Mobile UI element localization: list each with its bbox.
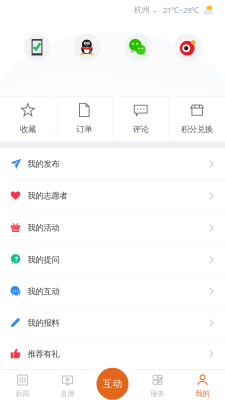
staticText: 互动 [102, 378, 122, 390]
button[interactable]: 手机号登录 [23, 34, 50, 61]
button[interactable]: 服务 [135, 370, 180, 400]
staticText: 订单 [76, 124, 92, 134]
button[interactable]: 我的 [180, 370, 225, 400]
staticText: 我的 [195, 389, 209, 398]
button[interactable]: QQ 登录 [74, 34, 101, 61]
button[interactable]: 互动 [96, 368, 128, 400]
staticText: ⌄ [152, 6, 158, 14]
staticText: 我的活动 [27, 222, 59, 233]
button[interactable]: 微信登录 [124, 34, 151, 61]
button[interactable]: 我的报料 [0, 307, 225, 338]
button[interactable]: 订单 [56, 96, 112, 141]
staticText: 直播 [60, 389, 74, 398]
staticText: 收藏 [20, 124, 36, 134]
staticText: 21℃~29℃ [163, 5, 199, 15]
button[interactable]: 收藏 [0, 96, 56, 141]
staticText: 我的志愿者 [27, 191, 67, 201]
button[interactable]: 直播 [45, 370, 90, 400]
staticText: 我的提问 [27, 254, 59, 265]
button[interactable]: 新闻 [0, 370, 45, 400]
staticText: 杭州 [134, 5, 150, 15]
staticText: 服务 [150, 389, 164, 398]
button[interactable]: 我的互动 [0, 276, 225, 307]
button[interactable]: ? [0, 244, 225, 276]
button[interactable]: 积分兑换 [169, 96, 225, 141]
staticText: ? [14, 254, 17, 264]
staticText: 积分兑换 [181, 124, 213, 134]
staticText: 推荐有礼 [27, 349, 59, 359]
button[interactable]: 评论 [113, 96, 169, 141]
button[interactable]: 微博登录 [174, 34, 201, 61]
button[interactable]: 杭州 [134, 5, 158, 15]
button[interactable]: 我的志愿者 [0, 180, 225, 212]
button[interactable]: 我的活动 [0, 212, 225, 244]
staticText: 新闻 [15, 389, 29, 398]
staticText: 我的互动 [27, 286, 59, 297]
button[interactable]: 推荐有礼 [0, 338, 225, 369]
staticText: 我的报料 [27, 318, 59, 328]
staticText: 评论 [133, 124, 149, 134]
staticText: 我的发布 [27, 159, 59, 169]
button[interactable]: 我的发布 [0, 148, 225, 180]
